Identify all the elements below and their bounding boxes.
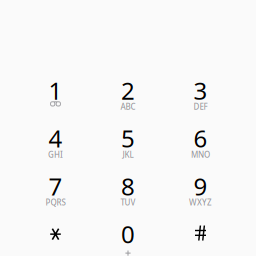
button[interactable]: 2 ABC [92,68,164,116]
button[interactable]: 9 WXYZ [164,164,237,212]
staticText: GHI [48,149,63,160]
button[interactable]: 1 Voicemail [19,68,92,116]
staticText: 3 [193,74,207,106]
staticText: 7 [48,170,62,202]
button[interactable]: Star [19,212,92,256]
button[interactable]: Pound [164,212,237,256]
staticText: MNO [191,149,210,160]
staticText: 9 [193,170,207,202]
button[interactable]: 8 TUV [92,164,164,212]
staticText: WXYZ [189,197,212,208]
button[interactable]: 3 DEF [164,68,237,116]
button[interactable]: 5 JKL [92,116,164,164]
button[interactable]: 7 PQRS [19,164,92,212]
staticText: 0 [121,218,135,250]
button[interactable]: 0 Plus [92,212,164,256]
staticText: JKL [122,149,133,160]
staticText: 4 [48,122,62,154]
button[interactable]: 6 MNO [164,116,237,164]
staticText: 8 [121,170,135,202]
staticText: 1 [48,74,62,106]
staticText: 2 [121,74,135,106]
staticText: 6 [193,122,207,154]
staticText: 5 [121,122,135,154]
staticText: PQRS [45,197,65,208]
staticText: DEF [193,101,207,112]
button[interactable]: 4 GHI [19,116,92,164]
staticText: TUV [120,197,135,208]
staticText: ABC [120,101,135,112]
